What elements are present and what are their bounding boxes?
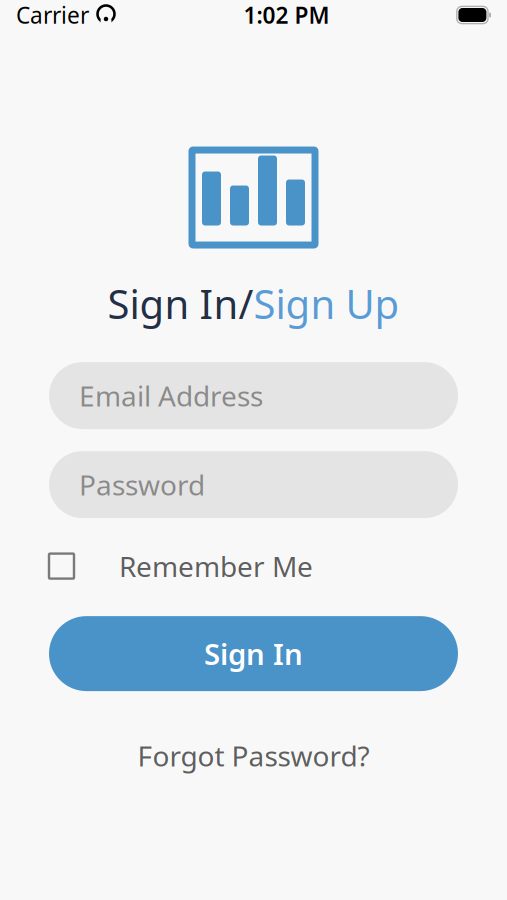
staticText: Carrier: [16, 0, 89, 30]
staticText: Email Address: [79, 377, 263, 414]
staticText: Forgot Password?: [137, 737, 369, 774]
staticText: 1:02 PM: [243, 0, 329, 30]
button[interactable]: Sign In: [49, 616, 458, 691]
staticText: Sign In: [204, 634, 303, 673]
button[interactable]: Sign Up: [253, 277, 399, 330]
staticText: Sign In/: [107, 277, 253, 330]
staticText: Password: [79, 466, 205, 503]
staticText: Sign Up: [253, 277, 399, 330]
staticText: Remember Me: [119, 547, 313, 585]
button[interactable]: Remember Me: [49, 548, 458, 584]
button[interactable]: Forgot Password?: [121, 729, 385, 782]
